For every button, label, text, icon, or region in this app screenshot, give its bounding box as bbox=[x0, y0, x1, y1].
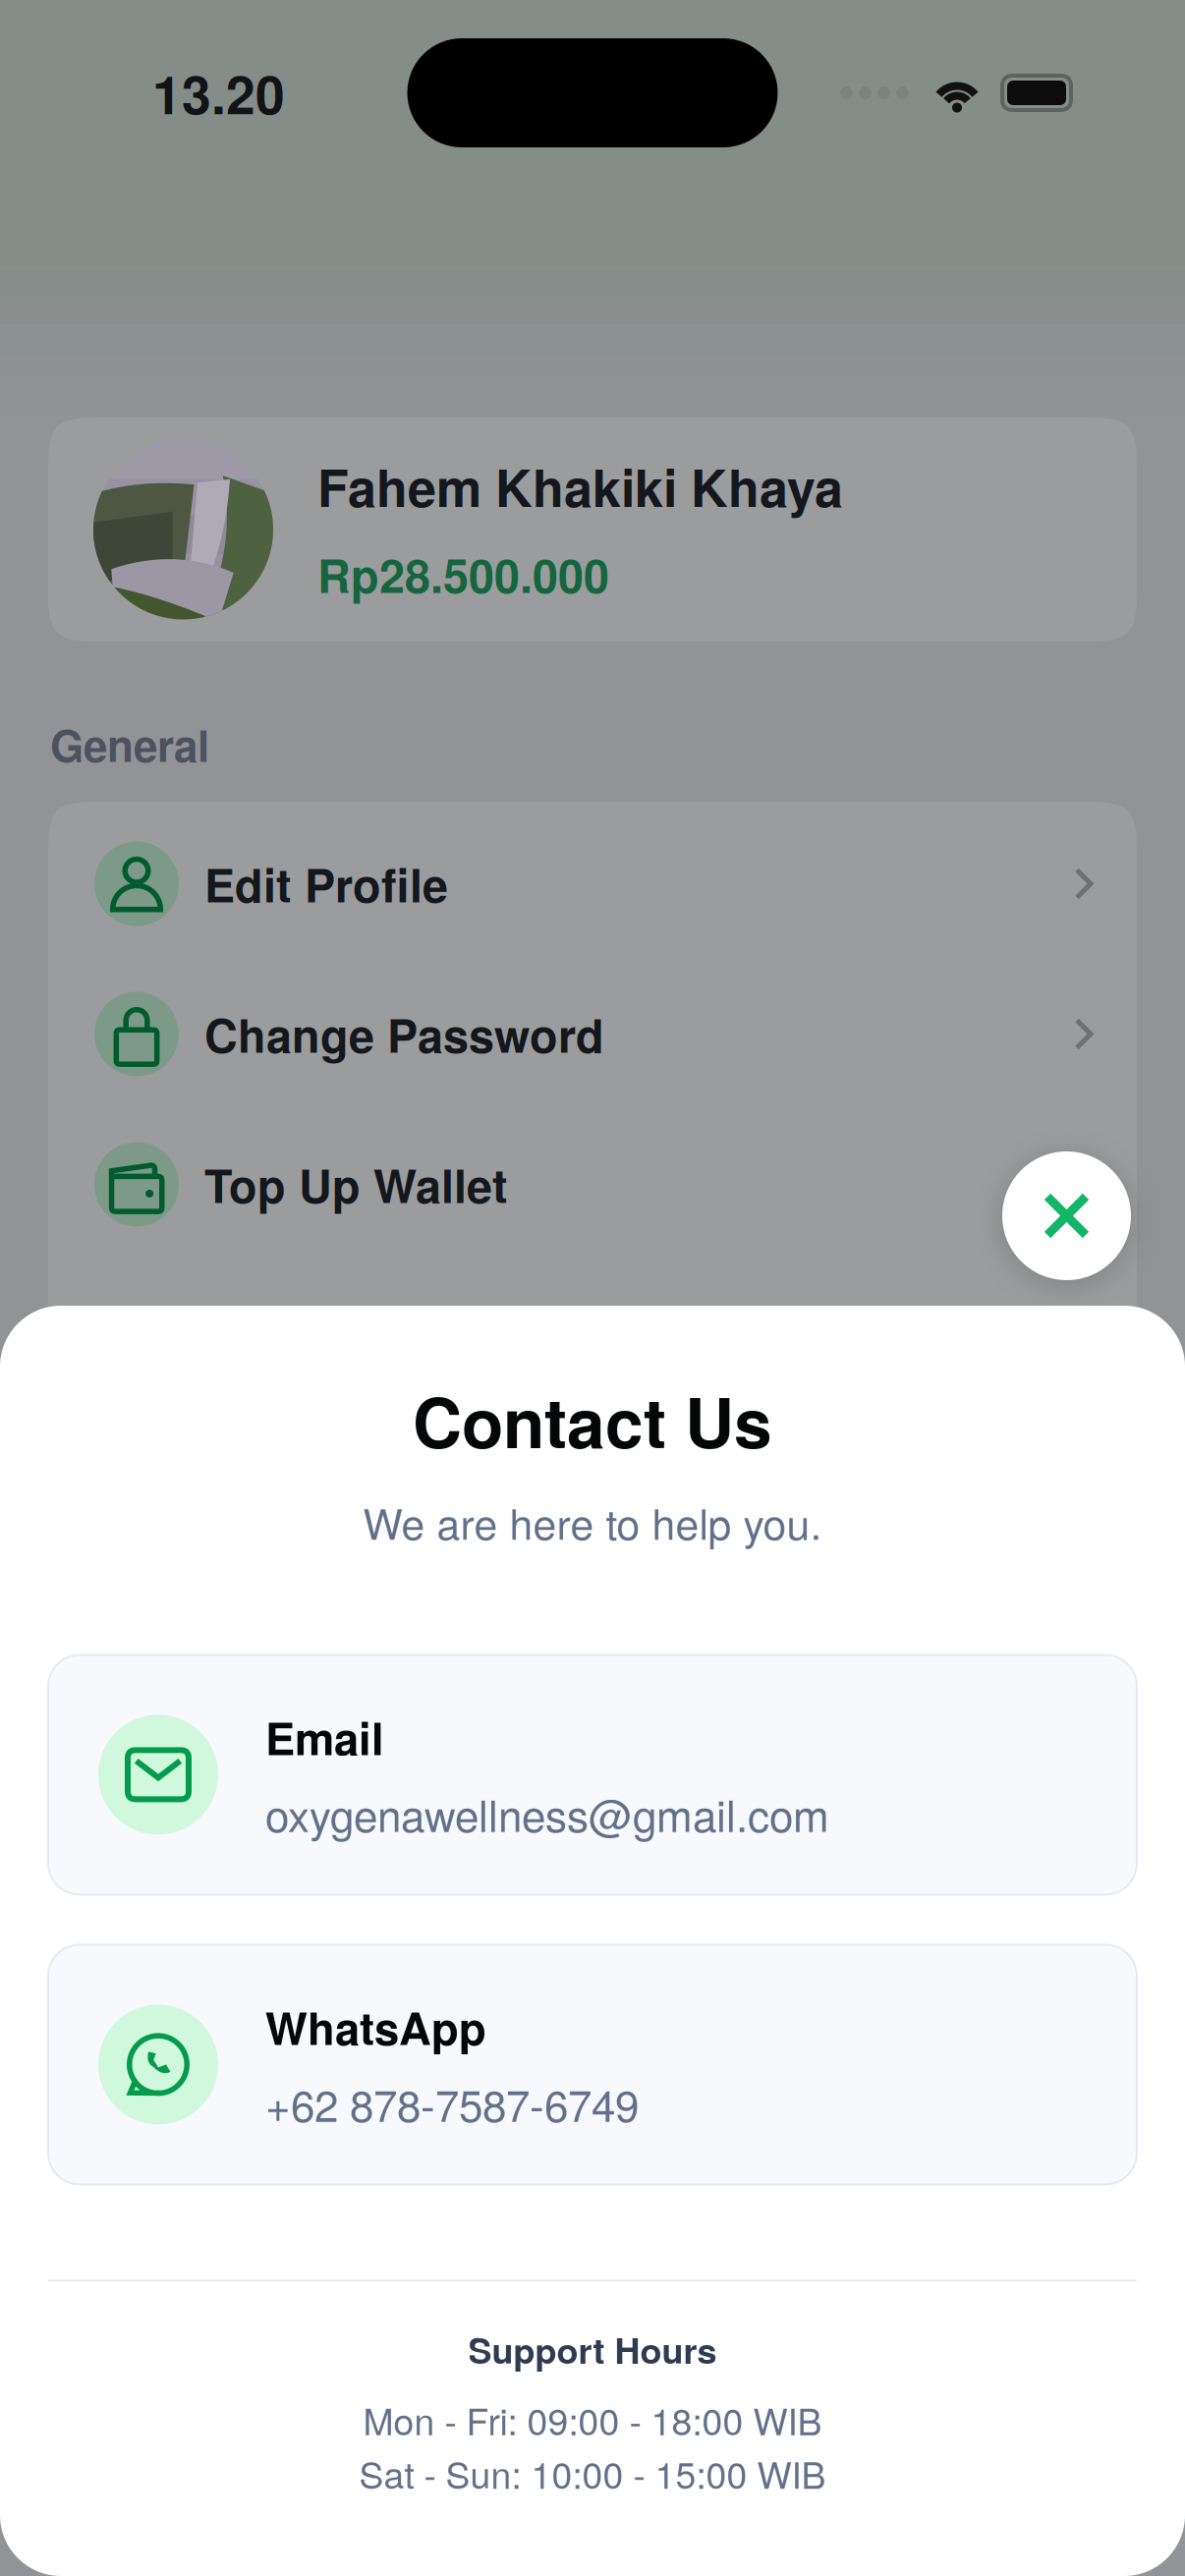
staticText: Email bbox=[265, 1705, 384, 1769]
button[interactable]: WhatsApp bbox=[48, 1945, 1137, 2184]
staticText: Sat - Sun: 10:00 - 15:00 WIB bbox=[359, 2447, 826, 2499]
staticText: General bbox=[50, 713, 209, 775]
staticText: Fahem Khakiki Khaya bbox=[317, 449, 843, 523]
staticText: Mon - Fri: 09:00 - 18:00 WIB bbox=[363, 2393, 822, 2446]
staticText: WhatsApp bbox=[265, 1995, 486, 2059]
staticText: Change Password bbox=[204, 1001, 604, 1067]
button[interactable]: Edit Profile bbox=[48, 809, 1137, 959]
staticText: Top Up Wallet bbox=[204, 1152, 508, 1217]
staticText: Rp28.500.000 bbox=[317, 541, 609, 607]
staticText: 13.20 bbox=[152, 55, 285, 130]
staticText: Edit Profile bbox=[204, 851, 448, 917]
button[interactable]: Top Up Wallet bbox=[48, 1109, 1137, 1260]
staticText: We are here to help you. bbox=[363, 1492, 822, 1552]
staticText: +62 878-7587-6749 bbox=[265, 2072, 639, 2134]
button[interactable]: Change Password bbox=[48, 959, 1137, 1109]
staticText: Support Hours bbox=[468, 2324, 717, 2375]
button[interactable]: Close bbox=[1002, 1151, 1131, 1280]
staticText: Contact Us bbox=[413, 1372, 772, 1469]
staticText: oxygenawellness@gmail.com bbox=[265, 1782, 829, 1844]
button[interactable]: Email bbox=[48, 1655, 1137, 1895]
